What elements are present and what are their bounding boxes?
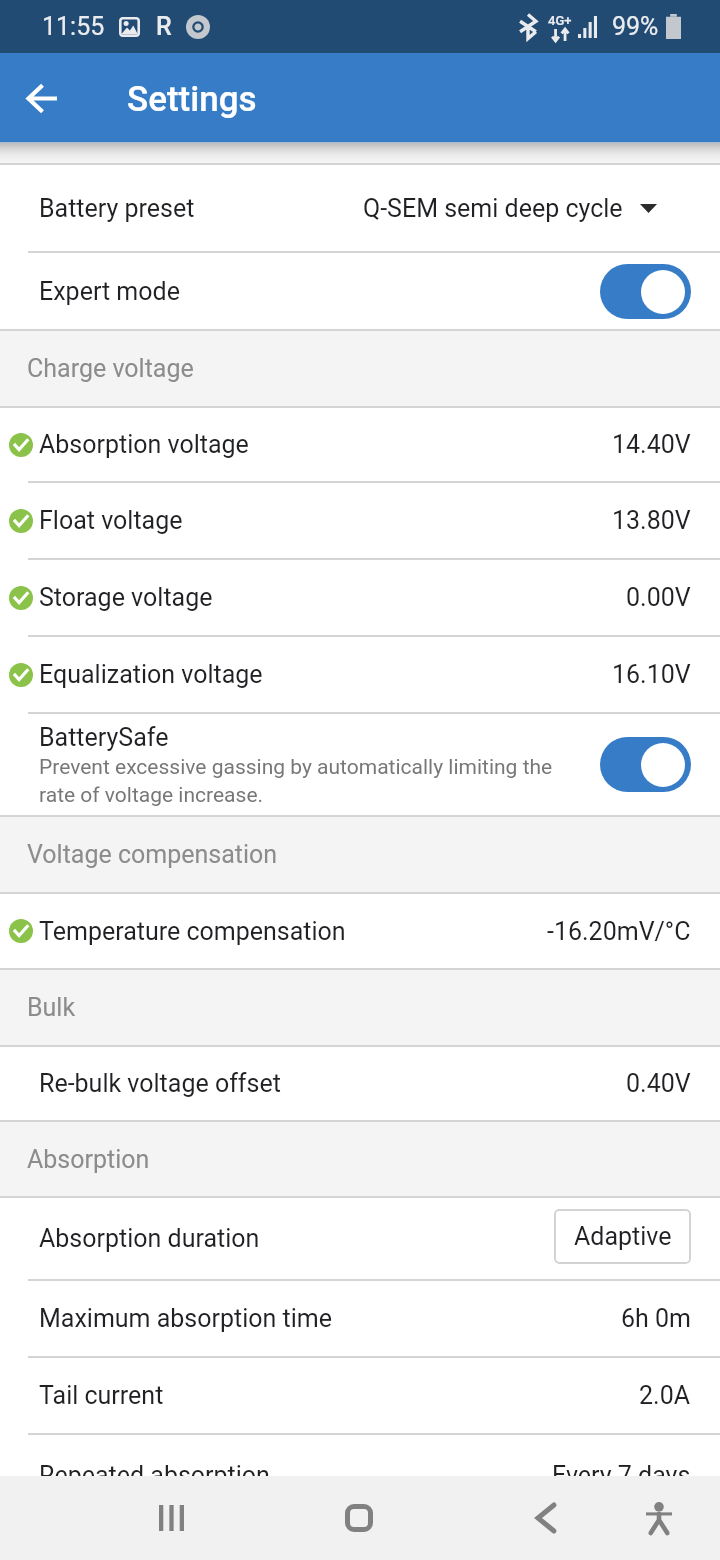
button[interactable]: Back — [13, 69, 71, 127]
button[interactable]: Re-bulk voltage offset — [0, 1047, 720, 1120]
staticText: Tail current — [39, 1381, 164, 1410]
button[interactable]: Home — [265, 1476, 452, 1560]
staticText: Absorption duration — [39, 1224, 260, 1253]
staticText: R — [156, 12, 172, 41]
button[interactable]: Temperature compensation — [0, 894, 720, 968]
staticText: Q-SEM semi deep cycle — [363, 194, 623, 223]
staticText: -16.20mV/°C — [547, 917, 691, 946]
button[interactable]: Tail current — [0, 1358, 720, 1433]
button[interactable]: Toggle — [600, 737, 691, 792]
button[interactable]: Absorption duration — [0, 1198, 720, 1279]
staticText: Absorption — [27, 1145, 150, 1174]
staticText: 16.10V — [612, 660, 691, 689]
staticText: Prevent excessive gassing by automatical… — [39, 755, 559, 807]
staticText: 0.40V — [626, 1069, 691, 1098]
button[interactable]: Expert mode — [0, 253, 720, 329]
staticText: 4G+ — [548, 13, 572, 28]
button[interactable]: BatterySafe — [0, 714, 720, 815]
staticText: 2.0A — [639, 1381, 691, 1410]
staticText: Charge voltage — [27, 354, 194, 383]
staticText: 11:55 — [42, 12, 105, 41]
staticText: 6h 0m — [621, 1304, 691, 1333]
staticText: Re-bulk voltage offset — [39, 1069, 281, 1098]
staticText: Every 7 days — [552, 1461, 691, 1476]
button[interactable]: Absorption voltage — [0, 408, 720, 481]
staticText: BatterySafe — [39, 723, 169, 752]
staticText: Equalization voltage — [39, 660, 263, 689]
staticText: Bulk — [27, 993, 76, 1022]
staticText: Float voltage — [39, 506, 183, 535]
staticText: Temperature compensation — [39, 917, 346, 946]
staticText: Settings — [127, 79, 257, 120]
button[interactable]: Repeated absorption — [0, 1435, 720, 1476]
button[interactable]: Float voltage — [0, 483, 720, 558]
button[interactable]: Accessibility — [620, 1476, 698, 1560]
staticText: Maximum absorption time — [39, 1304, 333, 1333]
staticText: 13.80V — [612, 506, 691, 535]
staticText: Voltage compensation — [27, 840, 278, 869]
staticText: 0.00V — [626, 583, 691, 612]
button[interactable]: Back — [452, 1476, 639, 1560]
staticText: Expert mode — [39, 277, 180, 306]
staticText: Absorption voltage — [39, 430, 249, 459]
button[interactable]: Adaptive — [554, 1209, 691, 1264]
button[interactable]: Maximum absorption time — [0, 1281, 720, 1356]
staticText: 99% — [612, 12, 659, 41]
staticText: 14.40V — [612, 430, 691, 459]
button[interactable]: Storage voltage — [0, 560, 720, 635]
button[interactable]: Recents — [78, 1476, 265, 1560]
staticText: Repeated absorption — [39, 1461, 270, 1476]
button[interactable]: Battery preset — [0, 165, 720, 251]
staticText: Battery preset — [39, 194, 195, 223]
button[interactable]: Toggle — [600, 264, 691, 319]
staticText: Storage voltage — [39, 583, 213, 612]
button[interactable]: Equalization voltage — [0, 637, 720, 712]
staticText: Adaptive — [574, 1222, 672, 1251]
